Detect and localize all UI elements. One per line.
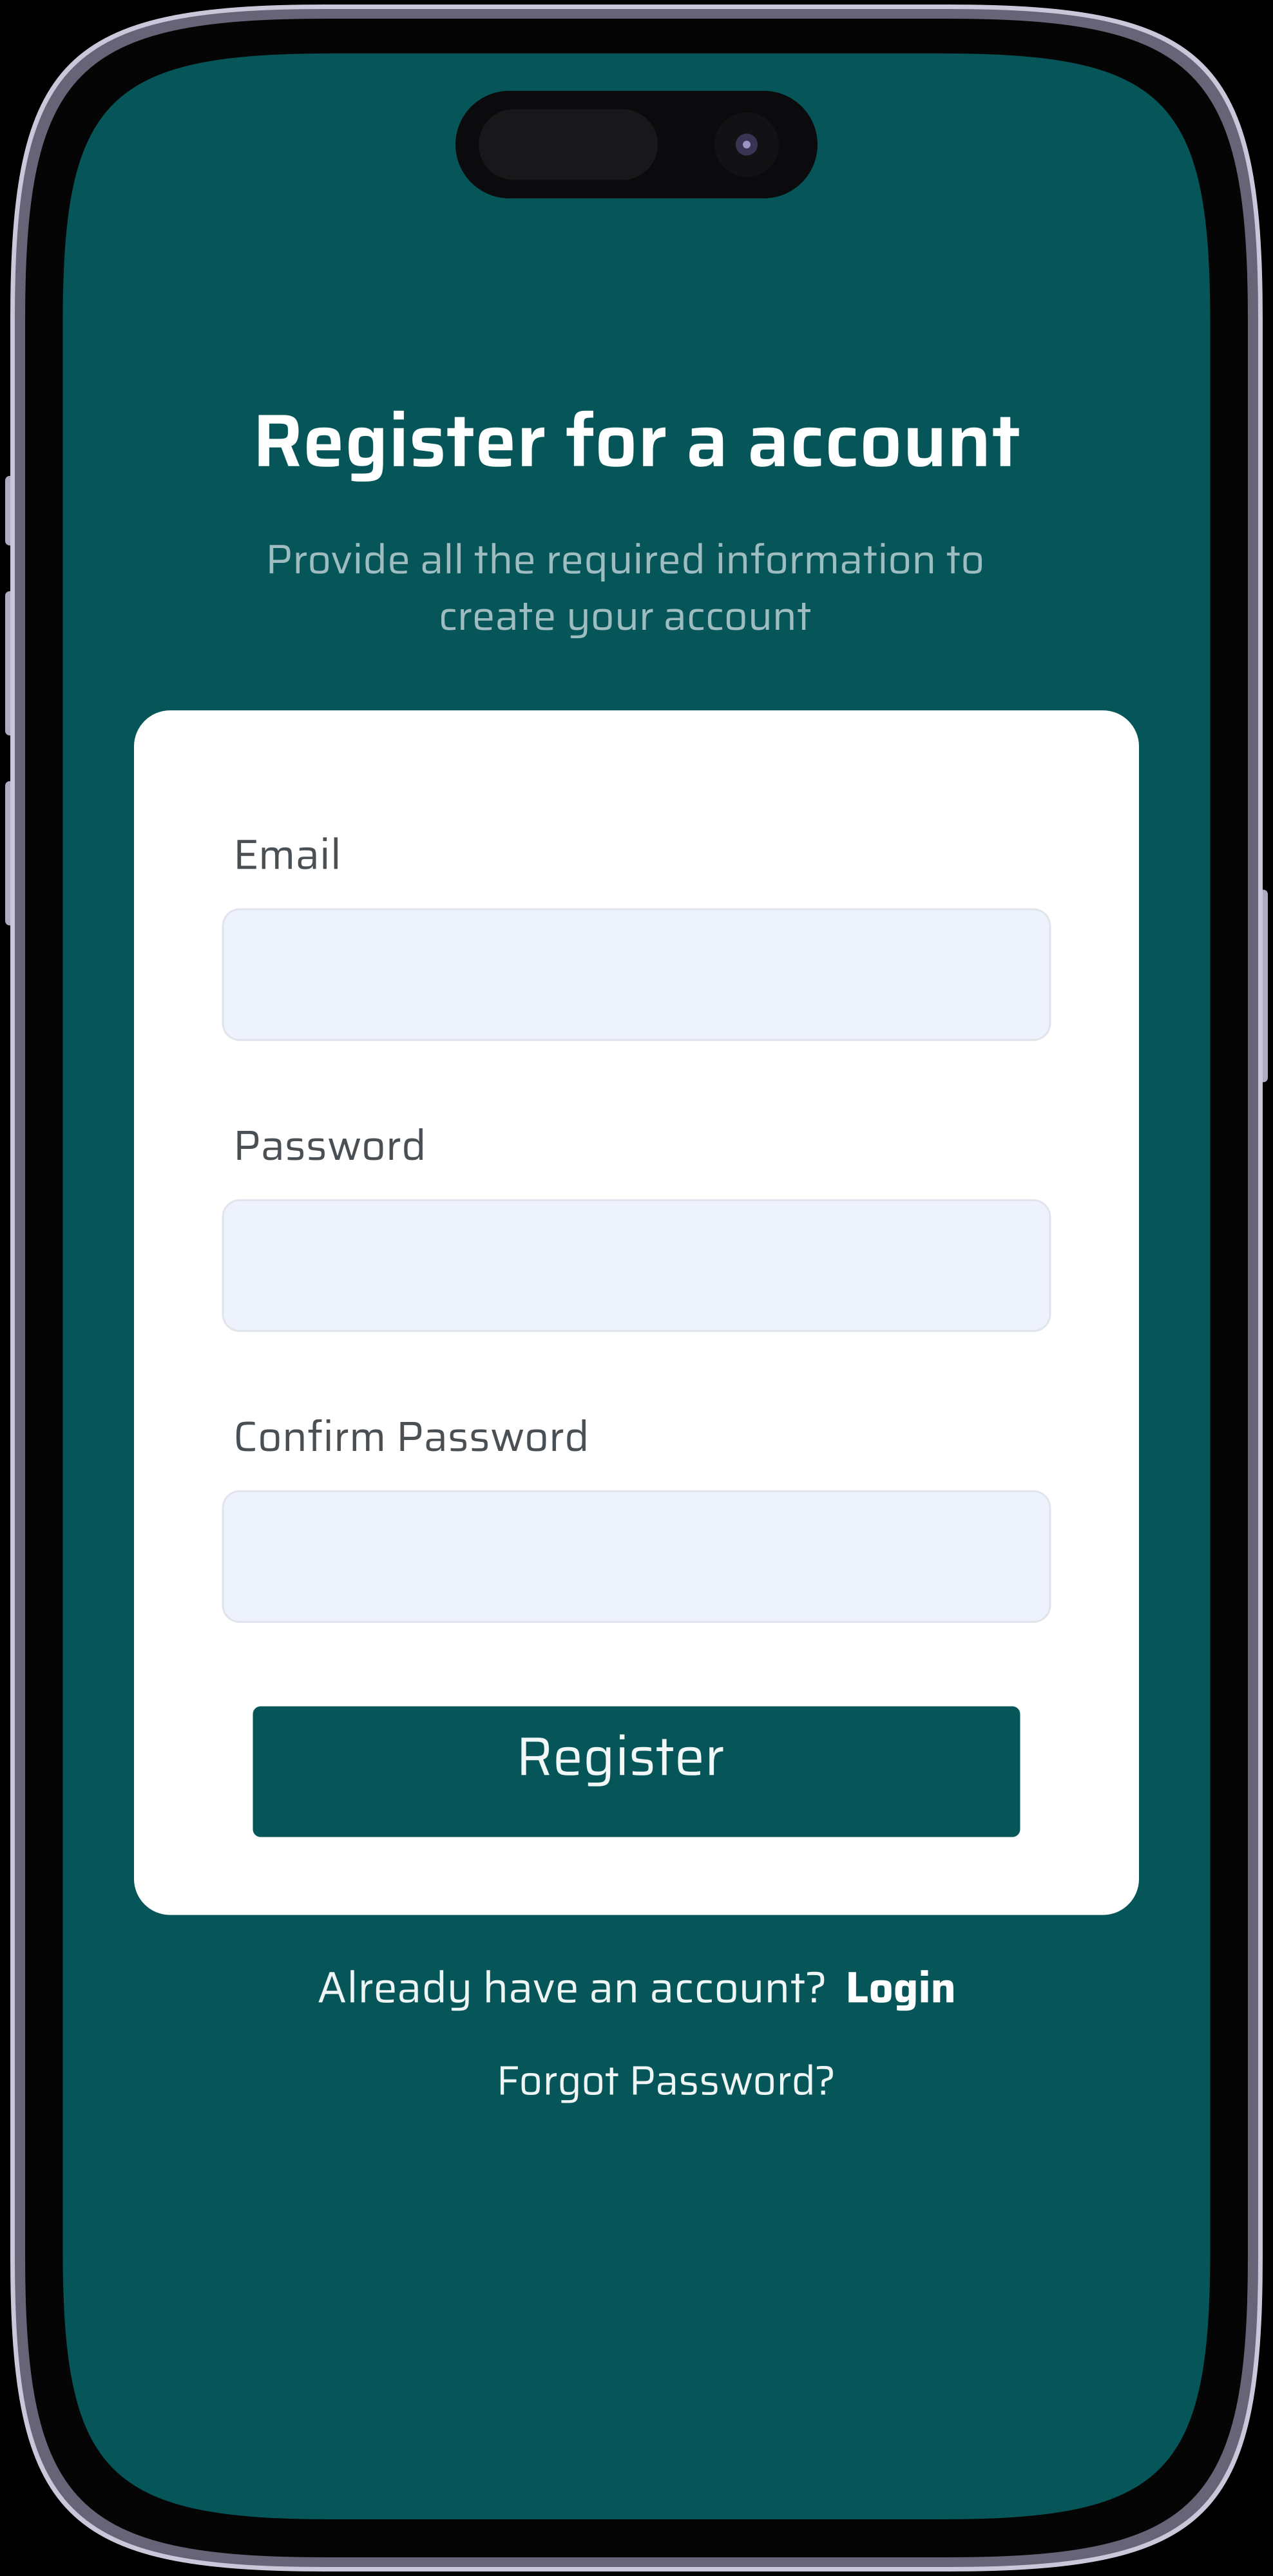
staticText: Already have an account? <box>317 1954 828 2021</box>
staticText: Confirm Password <box>233 1403 589 1469</box>
button[interactable]: Register <box>253 1706 1020 1837</box>
button[interactable]: Already have an account? <box>317 1954 956 2021</box>
staticText: Password <box>233 1112 426 1178</box>
staticText: Forgot Password? <box>496 2048 836 2112</box>
staticText: Register for a account <box>253 381 1020 499</box>
staticText: Register <box>516 1714 725 1799</box>
staticText: Login <box>846 1954 956 2021</box>
button[interactable]: Forgot Password? <box>467 2048 806 2112</box>
staticText: Email <box>233 821 341 887</box>
staticText: Provide all the required information to … <box>265 527 984 648</box>
